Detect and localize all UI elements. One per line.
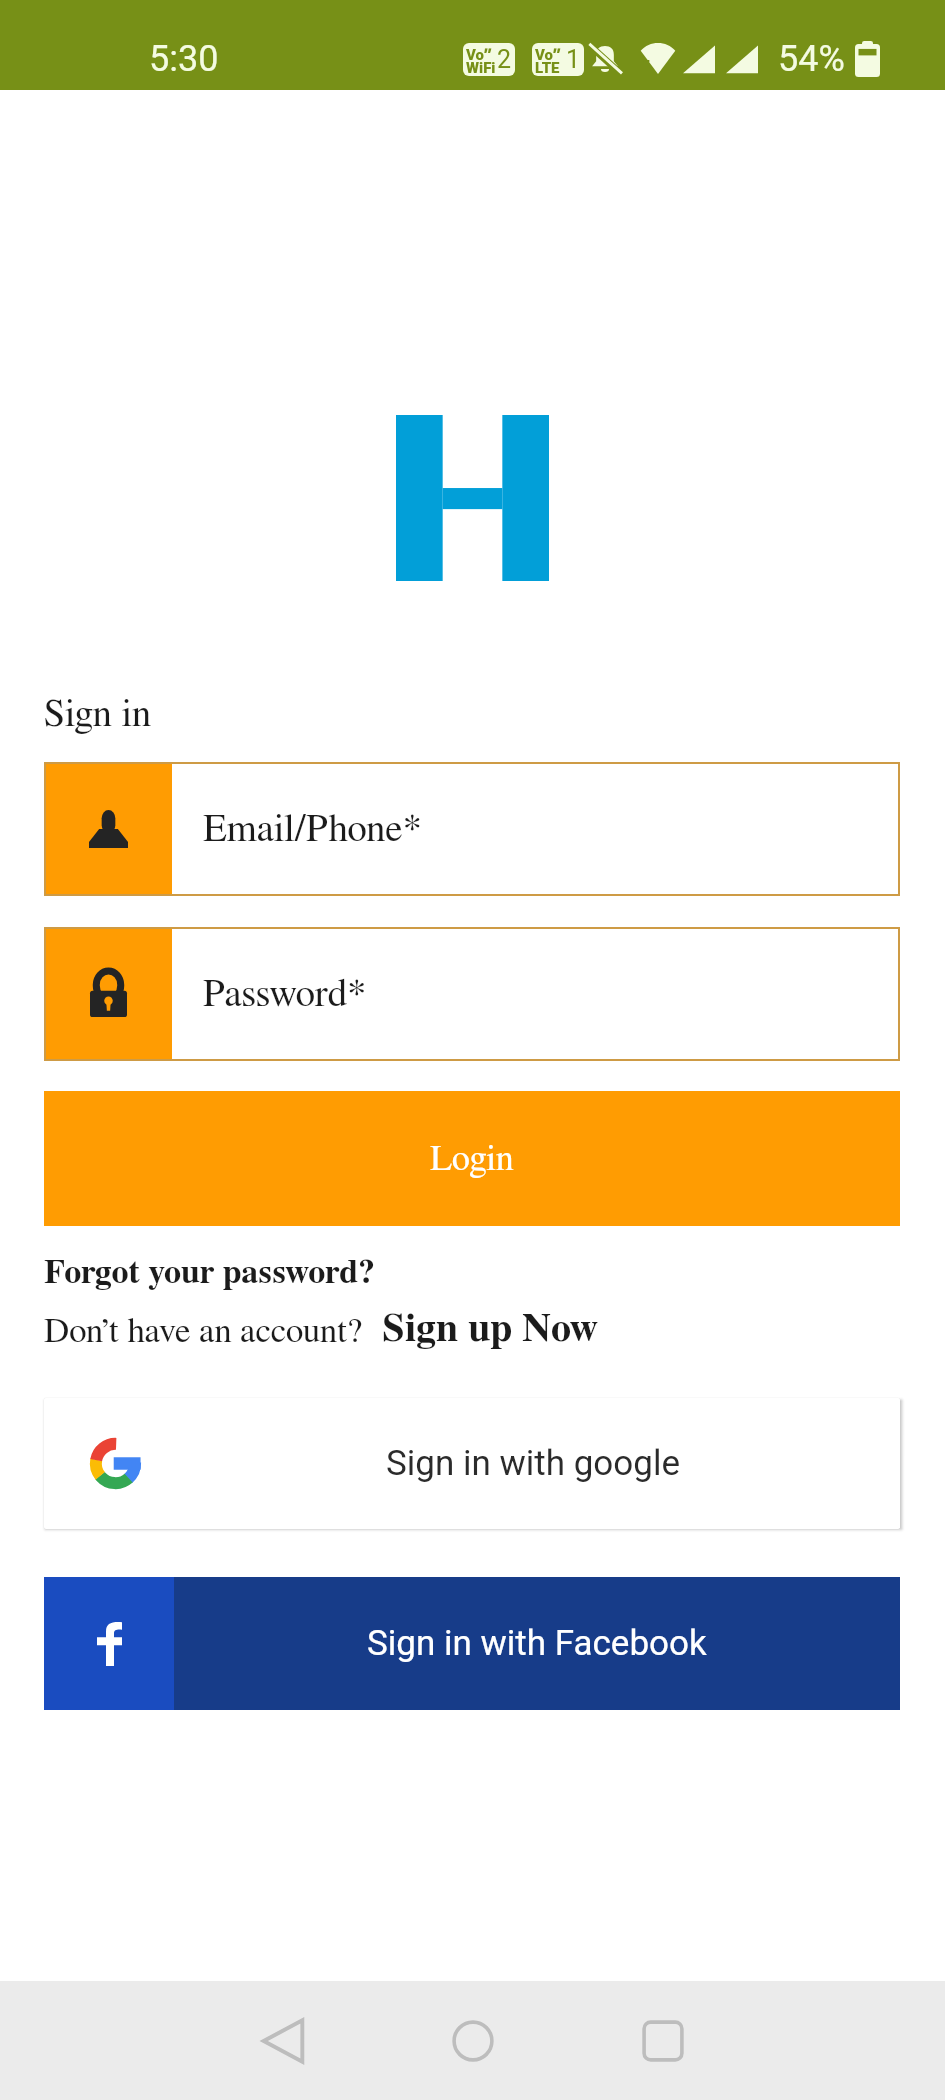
staticText: Voʺ bbox=[535, 44, 561, 64]
staticText: Login bbox=[430, 1141, 514, 1177]
staticText: Voʺ bbox=[466, 44, 492, 64]
staticText: Sign in bbox=[44, 695, 152, 734]
button[interactable]: Forgot your password? bbox=[44, 1256, 375, 1290]
staticText: WiFi bbox=[466, 59, 496, 76]
staticText: 54% bbox=[778, 38, 845, 80]
other: User bbox=[89, 810, 128, 848]
staticText: Don’t have an account? bbox=[44, 1314, 363, 1349]
staticText: 1 bbox=[566, 45, 581, 74]
button[interactable]: Sign up Now bbox=[382, 1309, 598, 1349]
button[interactable]: User bbox=[44, 762, 900, 896]
button[interactable]: Password bbox=[44, 927, 900, 1061]
button[interactable]: Recents bbox=[568, 1981, 758, 2100]
button[interactable]: Home bbox=[378, 1981, 568, 2100]
staticText: 5:30 bbox=[149, 38, 219, 80]
button[interactable]: Google bbox=[44, 1398, 900, 1529]
other: Google bbox=[90, 1438, 141, 1489]
other: Password bbox=[90, 971, 127, 1017]
staticText: Forgot your password? bbox=[44, 1256, 375, 1290]
staticText: Password* bbox=[203, 975, 367, 1014]
staticText: Sign up Now bbox=[382, 1309, 598, 1349]
button[interactable]: Back bbox=[188, 1981, 378, 2100]
staticText: 2 bbox=[497, 45, 512, 74]
staticText: LTE bbox=[535, 59, 560, 76]
staticText: Email/Phone* bbox=[203, 810, 422, 849]
button[interactable]: Facebook bbox=[44, 1577, 900, 1710]
staticText: Sign in with Facebook bbox=[367, 1623, 707, 1664]
button[interactable]: Login bbox=[44, 1091, 900, 1226]
staticText: Sign in with google bbox=[386, 1443, 680, 1484]
other: Facebook bbox=[97, 1622, 122, 1666]
